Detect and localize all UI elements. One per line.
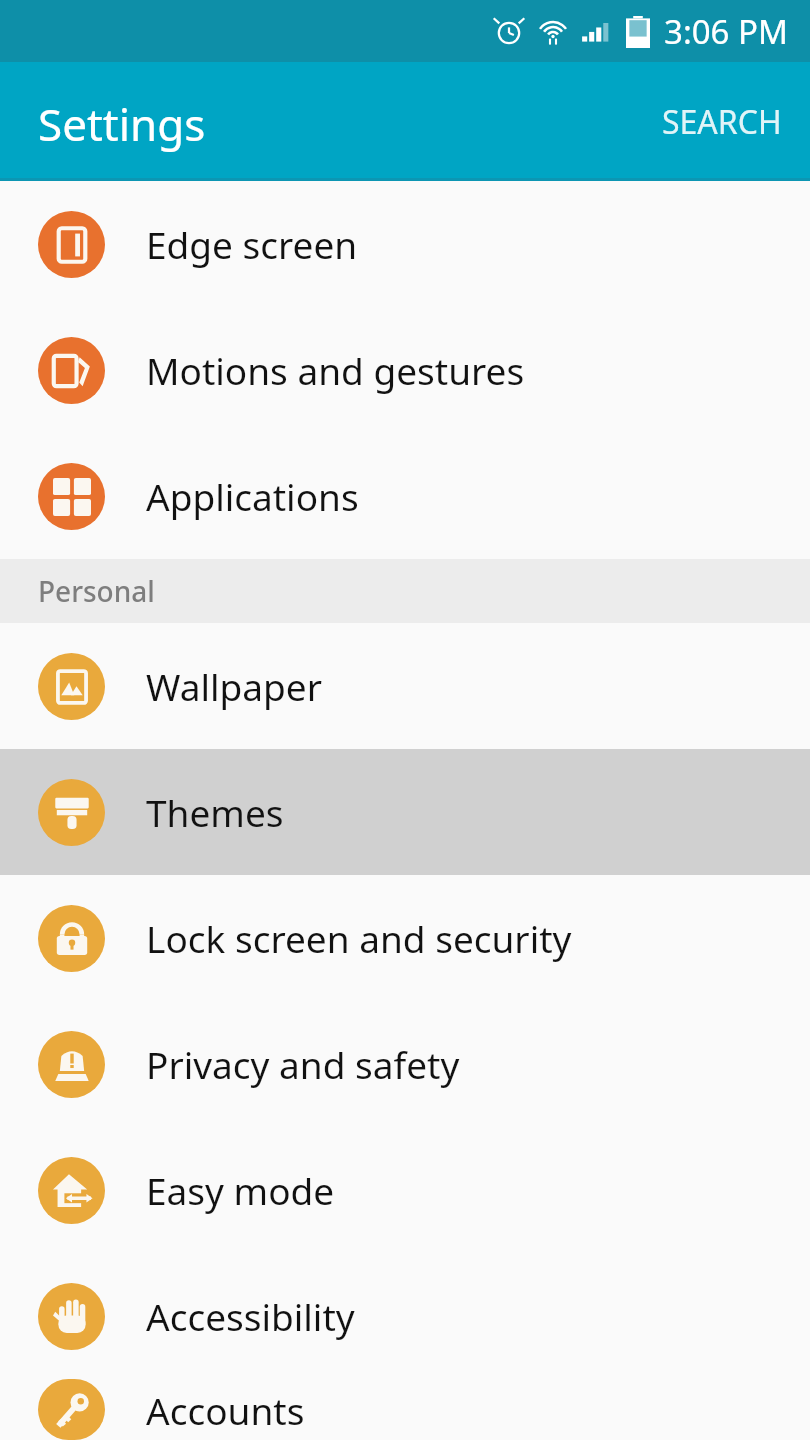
- staticText: Privacy and safety: [146, 1039, 460, 1089]
- staticText: Accessibility: [146, 1291, 355, 1341]
- staticText: Themes: [146, 787, 284, 837]
- staticText: Accounts: [146, 1385, 305, 1435]
- button[interactable]: Motions and gestures: [0, 307, 810, 433]
- staticText: Edge screen: [146, 219, 358, 269]
- button[interactable]: Edge screen: [0, 181, 810, 307]
- staticText: 3:06 PM: [664, 9, 788, 54]
- staticText: Easy mode: [146, 1165, 335, 1215]
- button[interactable]: Applications: [0, 433, 810, 559]
- button[interactable]: SEARCH: [634, 80, 810, 164]
- staticText: Settings: [38, 94, 206, 154]
- staticText: Wallpaper: [146, 661, 322, 711]
- button[interactable]: Wallpaper: [0, 623, 810, 749]
- button[interactable]: Easy mode: [0, 1127, 810, 1253]
- staticText: SEARCH: [662, 100, 782, 144]
- staticText: Applications: [146, 471, 359, 521]
- button[interactable]: Accounts: [0, 1379, 810, 1440]
- staticText: Motions and gestures: [146, 345, 525, 395]
- staticText: Personal: [38, 572, 155, 610]
- button[interactable]: Themes: [0, 749, 810, 875]
- button[interactable]: Privacy and safety: [0, 1001, 810, 1127]
- staticText: Lock screen and security: [146, 913, 572, 963]
- button[interactable]: Accessibility: [0, 1253, 810, 1379]
- button[interactable]: Lock screen and security: [0, 875, 810, 1001]
